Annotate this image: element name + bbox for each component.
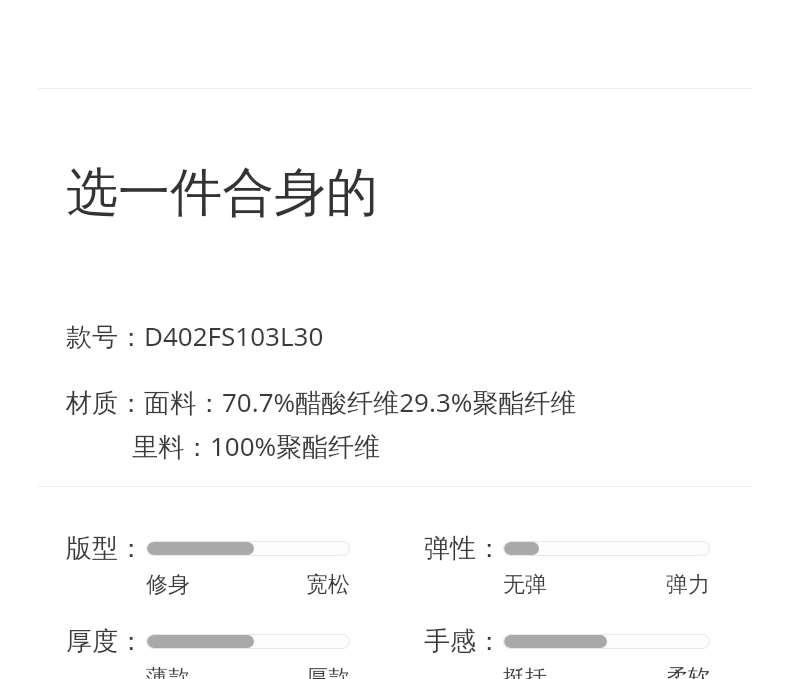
staticText: 弹力	[666, 571, 710, 599]
button[interactable]: 弹性：	[424, 532, 710, 599]
staticText: 厚度：	[66, 625, 144, 658]
staticText: 无弹	[503, 571, 547, 599]
staticText: 选一件合身的	[66, 160, 378, 226]
staticText: 厚款	[306, 664, 350, 679]
button[interactable]: 手感：	[424, 625, 710, 679]
staticText: 柔软	[666, 664, 710, 679]
button[interactable]: 厚度：	[66, 625, 350, 679]
staticText: 款号：D402FS103L30	[66, 318, 324, 354]
staticText: 弹性：	[424, 532, 502, 565]
staticText: 里料：100%聚酯纤维	[132, 428, 381, 464]
staticText: 宽松	[306, 571, 350, 599]
staticText: 挺括	[503, 664, 547, 679]
staticText: 版型：	[66, 532, 144, 565]
button[interactable]: 版型：	[66, 532, 350, 599]
staticText: 手感：	[424, 625, 502, 658]
staticText: 薄款	[146, 664, 190, 679]
staticText: 材质：面料：70.7%醋酸纤维29.3%聚酯纤维	[66, 384, 577, 420]
staticText: 修身	[146, 571, 190, 599]
